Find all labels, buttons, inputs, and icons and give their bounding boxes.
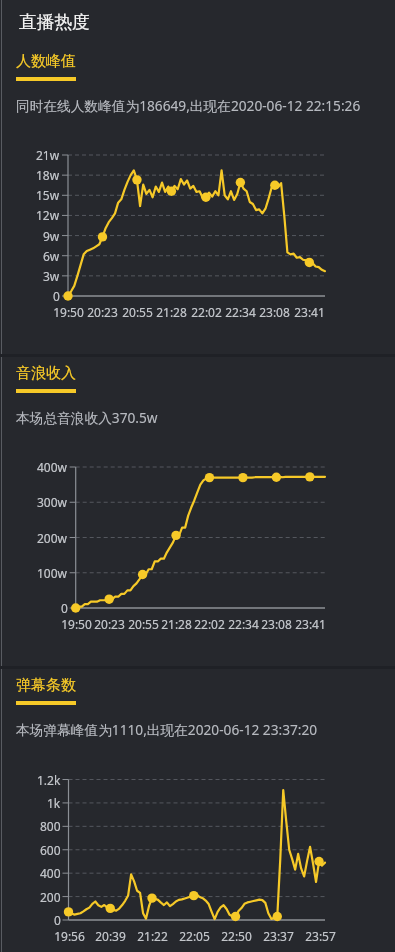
staticText: 20:55 xyxy=(122,304,153,320)
staticText: 19:50 xyxy=(61,616,92,632)
button[interactable]: 弹幕条数 xyxy=(16,676,78,706)
staticText: 19:56 xyxy=(54,928,85,944)
staticText: 0 xyxy=(53,288,60,304)
staticText: 人数峰值 xyxy=(16,52,76,71)
staticText: 弹幕条数 xyxy=(16,676,76,695)
staticText: 15w xyxy=(36,187,60,203)
staticText: 22:34 xyxy=(228,616,259,632)
staticText: 19:50 xyxy=(53,304,84,320)
staticText: 22:50 xyxy=(221,928,252,944)
staticText: 23:41 xyxy=(295,616,326,632)
staticText: 3w xyxy=(43,268,60,284)
staticText: 23:37 xyxy=(263,928,294,944)
staticText: 20:39 xyxy=(95,928,126,944)
staticText: 21w xyxy=(36,147,60,163)
staticText: 200w xyxy=(37,530,68,546)
staticText: 20:55 xyxy=(128,616,159,632)
staticText: 18w xyxy=(36,167,60,183)
staticText: 22:02 xyxy=(194,616,225,632)
staticText: 0 xyxy=(54,912,61,928)
staticText: 22:34 xyxy=(225,304,256,320)
staticText: 9w xyxy=(43,228,60,244)
staticText: 21:28 xyxy=(156,304,187,320)
staticText: 22:05 xyxy=(179,928,210,944)
staticText: 300w xyxy=(37,494,68,510)
staticText: 400w xyxy=(37,459,68,475)
staticText: 20:23 xyxy=(94,616,125,632)
button[interactable]: 音浪收入 xyxy=(16,364,78,394)
staticText: 21:28 xyxy=(161,616,192,632)
staticText: 100w xyxy=(37,565,68,581)
staticText: 21:22 xyxy=(137,928,168,944)
button[interactable]: 人数峰值 xyxy=(16,52,78,82)
staticText: 12w xyxy=(36,207,60,223)
staticText: 20:23 xyxy=(87,304,118,320)
staticText: 23:08 xyxy=(259,304,290,320)
staticText: 直播热度 xyxy=(19,11,90,33)
staticText: 400 xyxy=(40,865,61,881)
staticText: 600 xyxy=(40,842,61,858)
staticText: 本场总音浪收入370.5w xyxy=(16,408,158,427)
staticText: 音浪收入 xyxy=(16,364,76,383)
staticText: 同时在线人数峰值为186649,出现在2020-06-12 22:15:26 xyxy=(16,96,361,115)
staticText: 23:57 xyxy=(305,928,336,944)
staticText: 1k xyxy=(47,795,61,811)
staticText: 200 xyxy=(40,889,61,905)
staticText: 本场弹幕峰值为1110,出现在2020-06-12 23:37:20 xyxy=(16,720,318,739)
staticText: 23:08 xyxy=(261,616,292,632)
staticText: 6w xyxy=(43,248,60,264)
staticText: 1.2k xyxy=(37,772,61,788)
staticText: 22:02 xyxy=(191,304,222,320)
staticText: 23:41 xyxy=(294,304,325,320)
staticText: 0 xyxy=(61,600,68,616)
staticText: 800 xyxy=(40,818,61,834)
